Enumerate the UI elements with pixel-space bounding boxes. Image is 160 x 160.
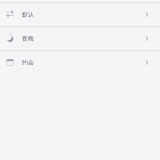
staticText: 夜晚 xyxy=(22,35,34,42)
button[interactable]: 约会 xyxy=(0,51,160,74)
staticText: 默认 xyxy=(22,11,34,18)
button[interactable]: 夜晚 xyxy=(0,27,160,50)
staticText: 约会 xyxy=(22,59,34,66)
button[interactable]: 默认 xyxy=(0,3,160,26)
